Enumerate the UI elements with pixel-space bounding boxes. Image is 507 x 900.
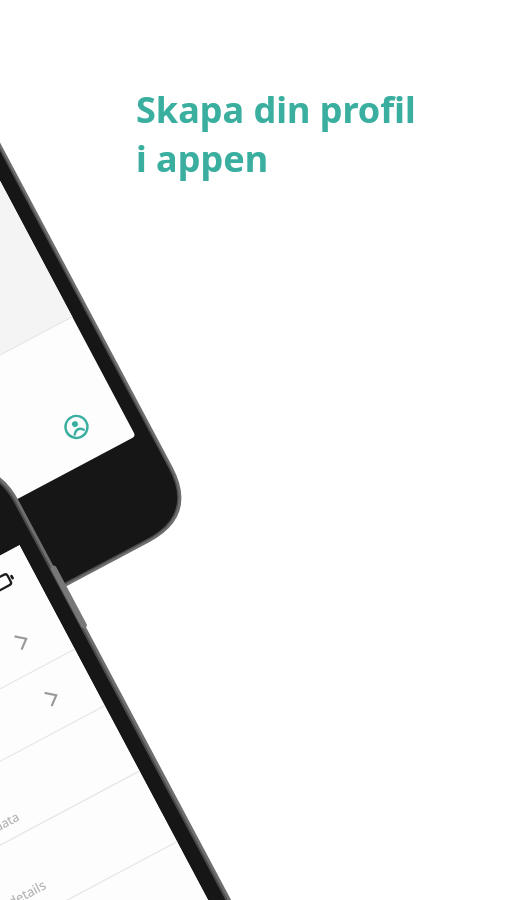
button[interactable]: Skapa din profil (136, 85, 416, 183)
staticText: Skapa din profil (136, 85, 416, 134)
staticText: i appen (136, 134, 269, 183)
